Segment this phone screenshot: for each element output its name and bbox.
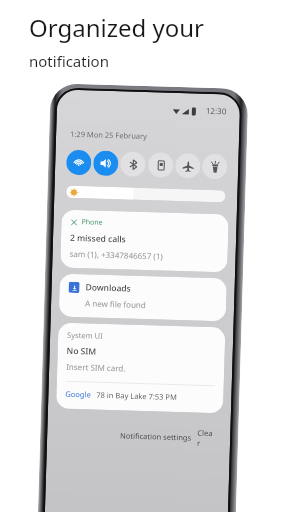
button[interactable]: Airplane mode — [175, 153, 201, 179]
button[interactable]: Flashlight — [202, 154, 228, 179]
button[interactable]: Bluetooth — [120, 151, 146, 177]
staticText: A new file found — [85, 297, 146, 310]
staticText: Google — [65, 389, 92, 399]
staticText: 2 missed calls — [70, 232, 126, 245]
staticText: No SIM — [66, 345, 97, 358]
staticText: 1:29 Mon 25 February — [70, 129, 147, 141]
button[interactable]: Phone — [60, 210, 229, 272]
button[interactable]: Brightness — [66, 186, 225, 202]
staticText: sam (1), +3347846657 (1) — [69, 248, 164, 262]
staticText: System UI — [67, 330, 103, 341]
button[interactable]: Sound — [93, 150, 119, 176]
staticText: Downloads — [85, 281, 132, 295]
button[interactable]: Google — [65, 389, 177, 402]
staticText: Notification settings — [120, 430, 191, 442]
staticText: notification — [29, 51, 109, 71]
button[interactable]: System UI — [56, 322, 225, 413]
staticText: Organized your — [29, 11, 204, 44]
staticText: Clear — [197, 428, 213, 448]
staticText: 78 in Bay Lake 7:53 PM — [96, 390, 178, 402]
button[interactable]: Mobile data — [148, 152, 174, 178]
staticText: 12:30 — [206, 105, 227, 116]
button[interactable]: Downloads — [59, 273, 227, 321]
button[interactable]: Notification settings — [117, 427, 194, 446]
staticText: Insert SIM card. — [66, 361, 126, 374]
button[interactable]: Clear — [194, 425, 217, 451]
button[interactable]: Wi-Fi — [66, 150, 92, 175]
staticText: Phone — [81, 217, 104, 228]
